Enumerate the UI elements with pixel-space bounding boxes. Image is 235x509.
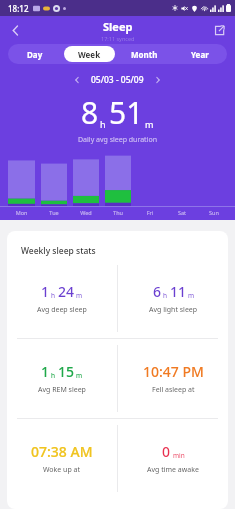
staticText: Week bbox=[78, 49, 101, 60]
staticText: 0 bbox=[162, 442, 171, 461]
staticText: Avg deep sleep bbox=[37, 305, 87, 315]
staticText: 10:47 PM bbox=[143, 362, 204, 381]
button[interactable]: 1 bbox=[7, 339, 117, 418]
button[interactable]: 10:47 PM bbox=[118, 339, 228, 418]
staticText: 6 bbox=[153, 282, 162, 301]
button[interactable]: Back bbox=[2, 17, 28, 43]
staticText: h bbox=[100, 118, 106, 130]
button[interactable]: Week bbox=[64, 46, 115, 62]
staticText: Fri bbox=[134, 209, 166, 216]
staticText: Daily avg sleep duration bbox=[0, 135, 235, 145]
staticText: m bbox=[188, 291, 195, 300]
staticText: 11 bbox=[170, 282, 187, 301]
staticText: Mon bbox=[5, 209, 38, 216]
staticText: 05/03 - 05/09 bbox=[91, 74, 144, 86]
staticText: Year bbox=[191, 49, 209, 60]
staticText: Day bbox=[27, 49, 43, 60]
button[interactable]: Year bbox=[174, 46, 225, 62]
staticText: Avg REM sleep bbox=[38, 385, 86, 395]
button[interactable]: Previous week bbox=[69, 72, 85, 88]
button[interactable]: Share bbox=[207, 18, 231, 42]
staticText: Avg light sleep bbox=[149, 305, 198, 315]
staticText: Woke up at bbox=[43, 465, 81, 475]
staticText: 15 bbox=[58, 362, 75, 381]
staticText: 18:12 bbox=[8, 3, 29, 14]
button[interactable]: Next week bbox=[150, 72, 166, 88]
staticText: 17:11 synced bbox=[101, 35, 135, 42]
staticText: Fell asleep at bbox=[152, 385, 195, 395]
staticText: Thu bbox=[102, 209, 134, 216]
staticText: m bbox=[76, 291, 83, 300]
button[interactable]: 1 bbox=[7, 259, 117, 338]
staticText: Wed bbox=[70, 209, 102, 216]
staticText: h bbox=[163, 291, 168, 300]
staticText: Avg time awake bbox=[147, 465, 199, 475]
button[interactable]: 6 bbox=[118, 259, 228, 338]
staticText: 24 bbox=[58, 282, 75, 301]
button[interactable]: 0 bbox=[118, 419, 228, 498]
button[interactable]: Month bbox=[119, 46, 170, 62]
staticText: Sleep bbox=[103, 19, 133, 34]
staticText: 07:38 AM bbox=[31, 442, 93, 461]
staticText: 1 bbox=[41, 282, 50, 301]
staticText: m bbox=[76, 371, 83, 380]
staticText: Tue bbox=[38, 209, 70, 216]
staticText: Weekly sleep stats bbox=[21, 245, 96, 257]
staticText: Sun bbox=[198, 209, 230, 216]
staticText: 1 bbox=[41, 362, 50, 381]
staticText: min bbox=[173, 451, 185, 460]
button[interactable]: 07:38 AM bbox=[7, 419, 117, 498]
staticText: m bbox=[145, 118, 154, 130]
staticText: Sat bbox=[166, 209, 198, 216]
staticText: 51 bbox=[109, 92, 144, 133]
staticText: 8 bbox=[81, 92, 99, 133]
button[interactable]: Day bbox=[10, 46, 60, 62]
staticText: h bbox=[51, 371, 56, 380]
staticText: h bbox=[51, 291, 56, 300]
staticText: Month bbox=[131, 49, 158, 60]
